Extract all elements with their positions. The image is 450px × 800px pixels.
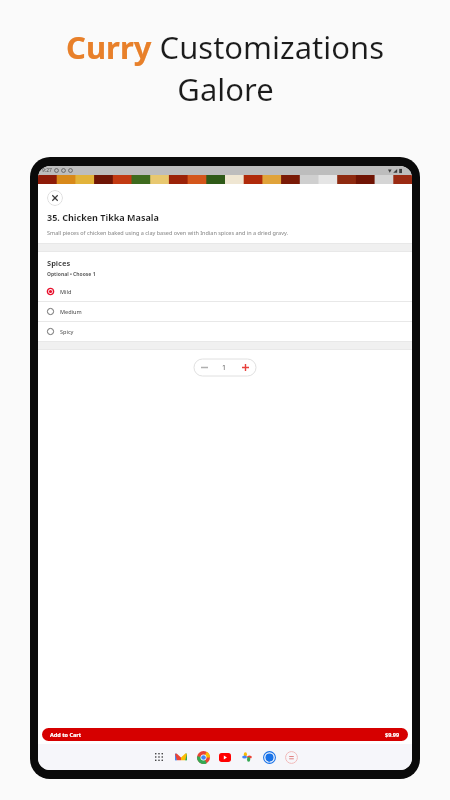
button[interactable]: Mild <box>38 282 412 301</box>
staticText: Add to Cart <box>50 731 82 738</box>
button[interactable]: App <box>148 746 170 768</box>
staticText: Optional • Choose 1 <box>47 271 96 278</box>
button[interactable]: Medium <box>38 302 412 321</box>
staticText: 35. Chicken Tikka Masala <box>47 211 159 223</box>
staticText: 9:27 <box>42 167 52 174</box>
button[interactable]: Spicy <box>38 322 412 341</box>
button[interactable]: App <box>214 746 236 768</box>
staticText: 1 <box>222 363 227 373</box>
button[interactable]: Decrease quantity <box>194 359 214 376</box>
button[interactable]: App <box>258 746 280 768</box>
staticText: Small pieces of chicken baked using a cl… <box>47 229 288 236</box>
button[interactable]: App <box>192 746 214 768</box>
button[interactable]: App <box>280 746 302 768</box>
button[interactable]: Increase quantity <box>235 359 256 376</box>
staticText: Medium <box>60 308 82 315</box>
staticText: Spices <box>47 258 71 268</box>
button[interactable]: App <box>170 746 192 768</box>
button[interactable]: Add to Cart <box>42 728 408 741</box>
button[interactable]: Close <box>47 190 63 206</box>
staticText: $9.99 <box>385 731 400 738</box>
staticText: Mild <box>60 288 72 295</box>
staticText: Curry Customizations <box>66 26 384 68</box>
button[interactable]: App <box>236 746 258 768</box>
staticText: Spicy <box>60 328 74 335</box>
staticText: Galore <box>177 68 274 110</box>
